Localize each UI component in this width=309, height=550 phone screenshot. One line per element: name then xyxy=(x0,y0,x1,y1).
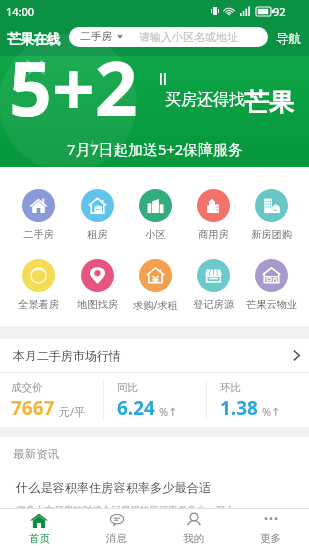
staticText: 成交价 xyxy=(11,381,43,394)
button[interactable]: 求购/求租 xyxy=(126,259,184,311)
button[interactable]: 消息 xyxy=(78,509,155,550)
button[interactable]: 我的 xyxy=(155,509,232,550)
button[interactable]: 更多 xyxy=(232,509,309,550)
button[interactable]: 小区 xyxy=(126,189,184,241)
staticText: 环比 xyxy=(220,381,241,394)
staticText: 芒果云物业 xyxy=(246,298,297,311)
staticText: %↑ xyxy=(262,404,281,419)
button[interactable]: 芒果云物业 xyxy=(242,259,300,311)
button[interactable]: 新房团购 xyxy=(242,189,300,241)
staticText: 二手房 xyxy=(80,30,113,44)
staticText: 请输入小区名或地址 xyxy=(139,30,238,44)
staticText: 消息 xyxy=(106,532,127,545)
staticText: 租房 xyxy=(87,228,108,241)
button[interactable]: 本月二手房市场行情 xyxy=(0,339,309,372)
staticText: 更多 xyxy=(260,532,281,545)
button[interactable]: 登记房源 xyxy=(184,259,242,311)
staticText: 新房团购 xyxy=(251,228,292,241)
staticText: 7月7日起加送5+2保障服务 xyxy=(67,139,243,159)
staticText: 14:00 xyxy=(6,4,35,19)
button[interactable]: 全景看房 xyxy=(9,259,68,311)
staticText: 同比 xyxy=(117,381,138,394)
staticText: 商用房 xyxy=(198,228,229,241)
button[interactable]: 租房 xyxy=(68,189,126,241)
button[interactable]: 商用房 xyxy=(184,189,242,241)
staticText: 元/平 xyxy=(59,404,86,419)
staticText: 7667 xyxy=(11,395,55,421)
staticText: 我的 xyxy=(183,532,204,545)
staticText: 芒果 xyxy=(244,87,294,118)
staticText: 小区 xyxy=(145,228,166,241)
staticText: 全景看房 xyxy=(18,298,59,311)
staticText: 芒果在线 xyxy=(7,31,60,48)
staticText: 买房还得找 xyxy=(165,90,245,110)
staticText: 登记房源 xyxy=(193,298,234,311)
staticText: 求购/求租 xyxy=(133,298,178,311)
button[interactable]: 二手房 xyxy=(69,27,268,47)
staticText: 什么是容积率住房容积率多少最合适 xyxy=(16,480,211,495)
staticText: 本月二手房市场行情 xyxy=(13,348,121,363)
button[interactable]: 首页 xyxy=(0,509,78,550)
button[interactable]: 地图找房 xyxy=(68,259,126,311)
staticText: 1.38 xyxy=(220,395,258,421)
button[interactable]: 二手房 xyxy=(9,189,68,241)
staticText: 最新资讯 xyxy=(13,447,59,461)
staticText: 首页 xyxy=(29,532,50,545)
staticText: %↑ xyxy=(159,404,178,419)
button[interactable]: 什么是容积率住房容积率多少最合适 xyxy=(0,471,309,508)
staticText: 地图找房 xyxy=(77,298,118,311)
button[interactable]: 导航 xyxy=(276,31,301,47)
staticText: 92 xyxy=(273,4,286,19)
staticText: 5+2 xyxy=(9,36,138,138)
staticText: 导航 xyxy=(276,31,301,47)
staticText: 二手房 xyxy=(23,228,54,241)
staticText: 很多人在买房的时候会问房屋的容积率是多少，那么 xyxy=(16,504,235,508)
staticText: 6.24 xyxy=(117,395,155,421)
